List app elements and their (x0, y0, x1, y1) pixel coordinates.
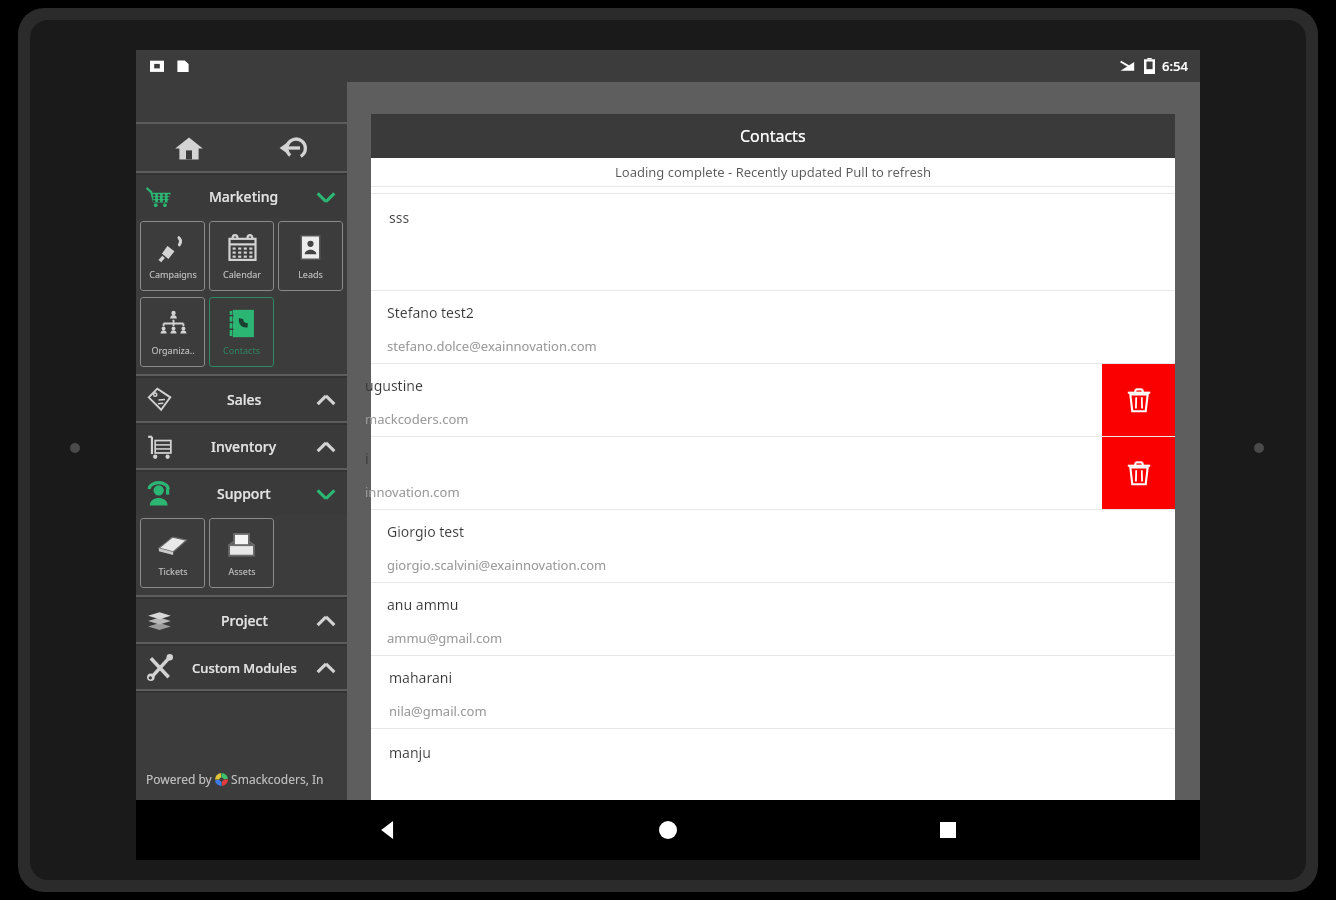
staticText: Organiza.. (151, 344, 195, 356)
button[interactable]: sss (371, 194, 1175, 290)
staticText: Leads (298, 268, 323, 280)
staticText: Support (217, 484, 271, 503)
button[interactable]: Leads (278, 221, 343, 291)
button[interactable]: Recent apps (920, 802, 976, 858)
button[interactable]: manju (371, 729, 1175, 801)
staticText: ugustine (365, 376, 423, 395)
staticText: Assets (228, 565, 256, 577)
staticText: Smackcoders, In (228, 771, 324, 787)
button[interactable]: Calendar (209, 221, 274, 291)
button[interactable]: Campaigns (140, 221, 205, 291)
button[interactable]: Tickets (140, 518, 205, 588)
button[interactable]: Assets (209, 518, 274, 588)
staticText: manju (389, 743, 431, 762)
staticText: anu ammu (387, 595, 459, 614)
button[interactable]: ugustine (371, 364, 1175, 436)
staticText: Giorgio test (387, 522, 464, 541)
staticText: Project (221, 611, 268, 630)
staticText: Calendar (223, 268, 261, 280)
button[interactable]: Project (136, 599, 347, 642)
staticText: giorgio.scalvini@exainnovation.com (387, 556, 607, 574)
button[interactable]: Logout (241, 124, 347, 171)
staticText: Contacts (740, 125, 806, 147)
button[interactable]: Delete (1102, 437, 1175, 509)
button[interactable]: Delete (1102, 364, 1175, 436)
staticText: ammu@gmail.com (387, 629, 503, 647)
staticText: stefano.dolce@exainnovation.com (387, 337, 597, 355)
button[interactable]: Inventory (136, 425, 347, 468)
button[interactable]: Back (360, 802, 416, 858)
button[interactable]: maharani (371, 656, 1175, 728)
button[interactable]: Custom Modules (136, 646, 347, 689)
staticText: mackcoders.com (365, 410, 469, 428)
button[interactable]: Organiza.. (140, 297, 205, 367)
staticText: Loading complete - Recently updated Pull… (615, 163, 931, 181)
staticText: Powered by (146, 771, 215, 787)
staticText: Inventory (211, 437, 277, 456)
button[interactable]: Contacts (209, 297, 274, 367)
button[interactable]: Support (136, 472, 347, 515)
button[interactable]: Marketing (136, 175, 347, 218)
staticText: Stefano test2 (387, 303, 474, 322)
staticText: innovation.com (365, 483, 460, 501)
button[interactable]: i (371, 437, 1175, 509)
staticText: Tickets (158, 565, 188, 577)
button[interactable]: anu ammu (371, 583, 1175, 655)
button[interactable]: Giorgio test (371, 510, 1175, 582)
staticText: 6:54 (1162, 57, 1188, 75)
button[interactable]: Home (640, 802, 696, 858)
staticText: Sales (227, 390, 262, 409)
staticText: Contacts (223, 344, 260, 356)
staticText: Marketing (209, 187, 279, 206)
staticText: nila@gmail.com (389, 702, 487, 720)
staticText: Campaigns (149, 268, 197, 280)
staticText: sss (389, 208, 410, 227)
button[interactable]: Sales (136, 378, 347, 421)
button[interactable]: Home (136, 124, 241, 171)
staticText: Custom Modules (192, 659, 297, 677)
staticText: i (365, 449, 369, 468)
button[interactable]: Stefano test2 (371, 291, 1175, 363)
staticText: maharani (389, 668, 453, 687)
